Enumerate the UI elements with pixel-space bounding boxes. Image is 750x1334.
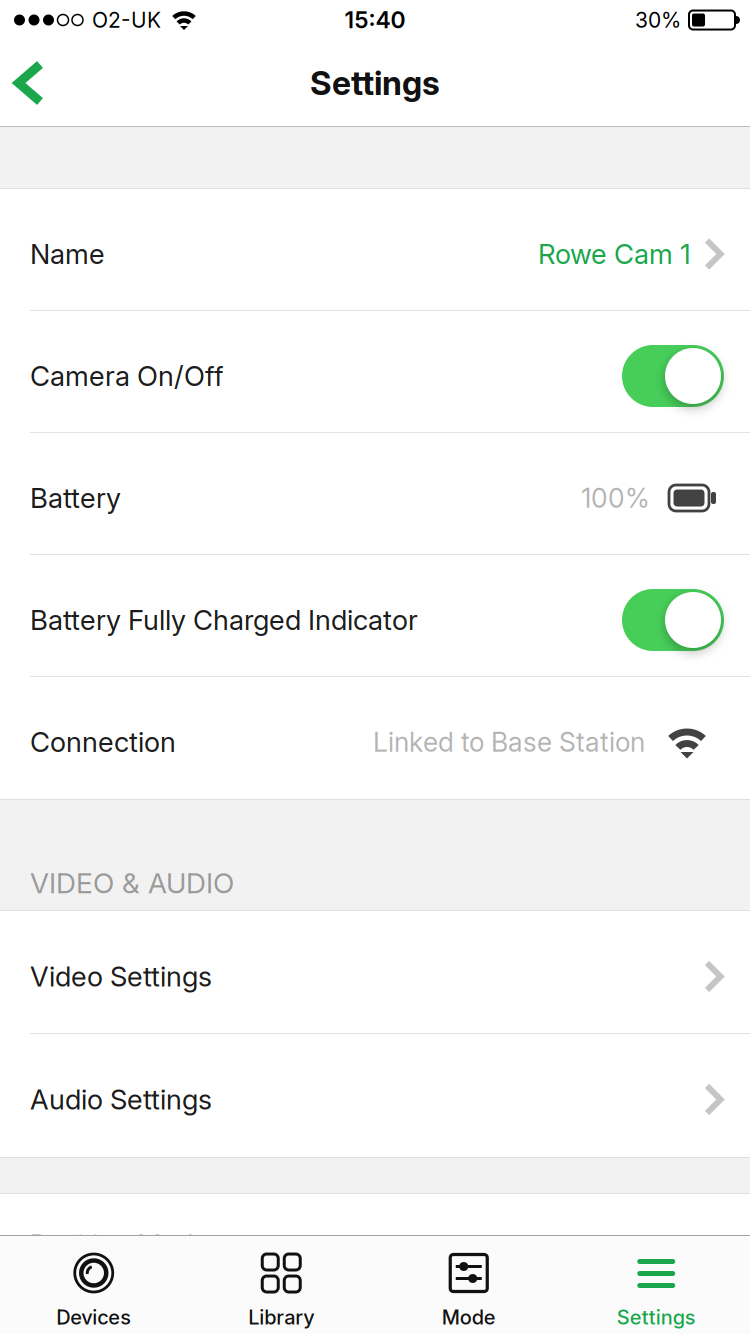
button[interactable]: Camera On/Off: [622, 345, 724, 407]
staticText: Mode: [442, 1305, 496, 1329]
staticText: Camera On/Off: [30, 359, 224, 393]
button[interactable]: Battery Fully Charged Indicator: [622, 589, 724, 651]
staticText: Name: [30, 237, 105, 271]
staticText: Battery: [30, 481, 121, 515]
staticText: 15:40: [344, 6, 405, 34]
staticText: Linked to Base Station: [373, 726, 645, 758]
button[interactable]: Devices: [0, 1236, 187, 1326]
button[interactable]: Mode: [375, 1236, 562, 1326]
staticText: Settings: [310, 63, 440, 103]
staticText: VIDEO & AUDIO: [30, 866, 234, 900]
button[interactable]: Video Settings: [0, 911, 750, 1034]
staticText: 100%: [581, 482, 650, 514]
button[interactable]: Audio Settings: [0, 1034, 750, 1157]
staticText: Connection: [30, 725, 176, 759]
button[interactable]: Name: [0, 189, 750, 311]
staticText: 30%: [635, 7, 681, 33]
staticText: Position Mode: [30, 1228, 209, 1261]
staticText: Video Settings: [30, 960, 212, 993]
staticText: Settings: [617, 1305, 696, 1329]
staticText: O2-UK: [92, 7, 161, 33]
staticText: Audio Settings: [30, 1083, 212, 1116]
staticText: Devices: [56, 1305, 131, 1329]
button[interactable]: Back: [0, 45, 44, 121]
button[interactable]: Library: [187, 1236, 375, 1326]
staticText: Rowe Cam 1: [538, 237, 691, 271]
staticText: Battery Fully Charged Indicator: [30, 603, 418, 637]
staticText: Library: [248, 1305, 314, 1329]
button[interactable]: Settings: [562, 1236, 750, 1326]
